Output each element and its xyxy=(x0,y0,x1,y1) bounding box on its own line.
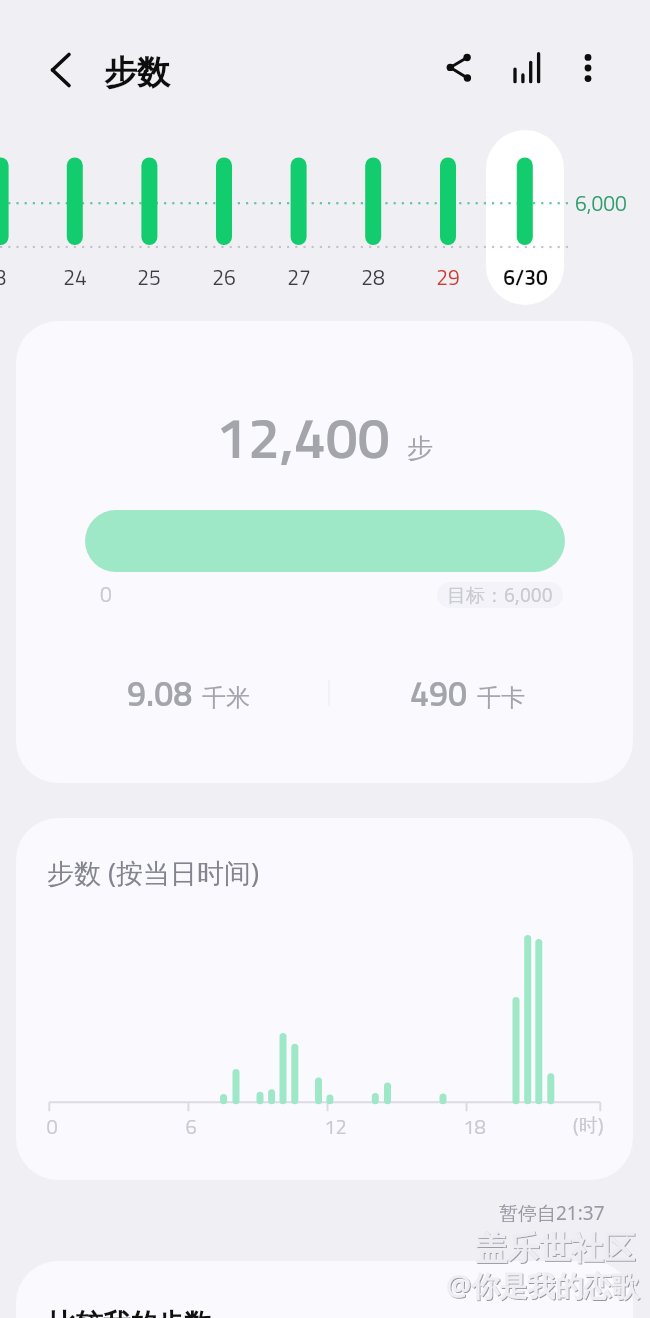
staticText: 6 xyxy=(185,1111,197,1141)
staticText: 盖乐世社区 xyxy=(476,1229,636,1269)
button[interactable]: 12,400 xyxy=(16,321,633,783)
staticText: 0 xyxy=(100,578,112,610)
button[interactable]: More options xyxy=(552,32,624,104)
button[interactable]: 比较我的步数 xyxy=(16,1261,633,1318)
button[interactable]: Share xyxy=(425,32,497,104)
staticText: 目标：6,000 xyxy=(447,582,553,608)
staticText: @你是我的恋歌 xyxy=(447,1267,641,1305)
staticText: 24 xyxy=(63,261,87,293)
staticText: 29 xyxy=(436,261,460,293)
staticText: 6,000 xyxy=(575,187,627,219)
staticText: 步 xyxy=(407,432,433,465)
button[interactable]: 步数 (按当日时间) xyxy=(16,818,633,1180)
staticText: 比较我的步数 xyxy=(49,1307,211,1318)
button[interactable] xyxy=(486,130,564,305)
staticText: 步数 xyxy=(104,52,170,94)
staticText: 步数 (按当日时间) xyxy=(47,854,260,891)
staticText: 千米 xyxy=(202,683,250,713)
staticText: (时) xyxy=(573,1112,604,1138)
staticText: 9.08 xyxy=(127,667,193,719)
staticText: 千卡 xyxy=(477,683,525,713)
staticText: @你是我的恋歌 xyxy=(446,1266,640,1304)
staticText: 0 xyxy=(46,1111,58,1141)
staticText: 26 xyxy=(212,261,236,293)
staticText: 18 xyxy=(463,1111,486,1141)
button[interactable]: View chart xyxy=(493,32,565,104)
staticText: 28 xyxy=(361,261,385,293)
button[interactable]: Back xyxy=(25,34,97,106)
staticText: 490 xyxy=(410,667,468,719)
staticText: 12,400 xyxy=(216,393,390,480)
staticText: 盖乐世社区 xyxy=(475,1228,635,1268)
staticText: 6/30 xyxy=(503,261,548,293)
staticText: 暂停自21:37 xyxy=(499,1200,605,1226)
staticText: 25 xyxy=(137,261,161,293)
staticText: 3 xyxy=(0,261,7,293)
staticText: 12 xyxy=(324,1111,347,1141)
staticText: 27 xyxy=(287,261,311,293)
